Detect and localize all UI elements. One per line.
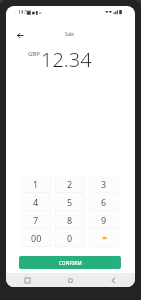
staticText: 2	[67, 178, 73, 190]
staticText: CONFIRM	[59, 260, 82, 266]
staticText: 5	[67, 196, 73, 208]
button[interactable]: Recents	[6, 273, 49, 287]
button[interactable]: Back	[13, 28, 27, 42]
button[interactable]: Back	[92, 273, 135, 287]
staticText: 6	[101, 196, 107, 208]
button[interactable]: 2	[55, 176, 85, 192]
button[interactable]	[89, 230, 119, 246]
staticText: 12.34	[41, 46, 92, 73]
button[interactable]: 0	[55, 230, 85, 246]
staticText: Sale	[65, 31, 74, 37]
button[interactable]: 6	[89, 194, 119, 210]
button[interactable]: 4	[21, 194, 51, 210]
button[interactable]: 3	[89, 176, 119, 192]
staticText: 4	[33, 196, 39, 208]
button[interactable]: 7	[21, 212, 51, 228]
button[interactable]: 1	[21, 176, 51, 192]
button[interactable]: 8	[55, 212, 85, 228]
staticText: 8	[67, 214, 73, 226]
button[interactable]: 5	[55, 194, 85, 210]
staticText: 0	[67, 232, 73, 244]
staticText: 14:50	[18, 9, 31, 16]
staticText: 3	[101, 178, 107, 190]
button[interactable]: CONFIRM	[19, 256, 121, 269]
button[interactable]: 00	[21, 230, 51, 246]
button[interactable]: 9	[89, 212, 119, 228]
staticText: 7	[33, 214, 39, 226]
staticText: 9	[101, 214, 107, 226]
staticText: GBP	[28, 50, 40, 58]
staticText: 1	[33, 178, 39, 190]
button[interactable]: Home	[49, 273, 92, 287]
staticText: 00	[31, 232, 42, 244]
